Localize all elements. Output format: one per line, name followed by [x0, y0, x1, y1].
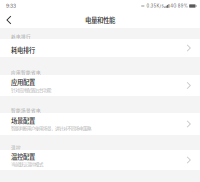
staticText: 温控	[11, 145, 21, 149]
staticText: 场景配置	[11, 118, 35, 123]
button[interactable]: 场景配置	[0, 113, 200, 135]
staticText: 应用配置	[11, 79, 35, 85]
staticText: 应用智能省电	[11, 70, 41, 74]
button[interactable]: 耗电排行	[0, 39, 200, 57]
staticText: 耗电排行	[11, 47, 35, 53]
staticText: 9:33	[6, 4, 16, 8]
staticText: 89%	[178, 4, 188, 8]
staticText: 当前默认温控模式	[11, 162, 43, 166]
staticText: 4G	[170, 4, 176, 8]
staticText: 电量和性能	[85, 17, 115, 23]
staticText: 针对应用配置后台功能	[11, 88, 51, 92]
button[interactable]: Back	[0, 12, 18, 28]
staticText: 0.35K/s	[146, 4, 163, 8]
staticText: 智能场景省电	[11, 108, 41, 112]
staticText: 耗电排行	[11, 34, 31, 38]
staticText: 智能判断用户使用场景，进针对不同场电策略	[11, 126, 91, 130]
button[interactable]: 温控配置	[0, 150, 200, 170]
button[interactable]: 应用配置	[0, 75, 200, 96]
staticText: 温控配置	[11, 154, 35, 159]
